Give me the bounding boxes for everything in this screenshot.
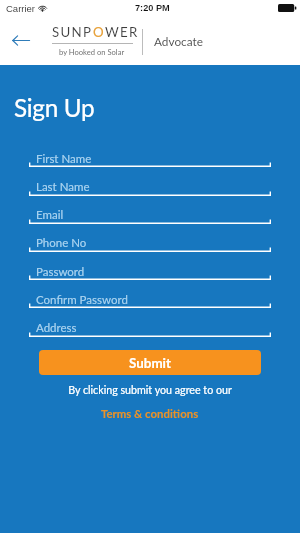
staticText: First Name: [36, 152, 92, 166]
button[interactable]: Back: [3, 26, 39, 55]
button[interactable]: [29, 316, 271, 340]
staticText: Carrier: [6, 3, 36, 14]
staticText: Sign Up: [14, 93, 95, 122]
staticText: by Hooked on Solar: [59, 47, 125, 56]
staticText: WER: [105, 24, 139, 40]
button[interactable]: Submit: [39, 350, 261, 375]
button[interactable]: [29, 259, 271, 283]
staticText: SUNP: [52, 24, 93, 40]
button[interactable]: [29, 146, 271, 170]
button[interactable]: Terms & conditions: [101, 407, 199, 421]
staticText: Password: [36, 265, 85, 279]
staticText: Phone No: [36, 236, 87, 250]
staticText: Confirm Password: [36, 293, 128, 307]
button[interactable]: [29, 175, 271, 199]
staticText: 7:20 PM: [135, 3, 170, 13]
staticText: Submit: [129, 355, 171, 371]
button[interactable]: [29, 203, 271, 227]
button[interactable]: [29, 287, 271, 311]
button[interactable]: [29, 231, 271, 255]
staticText: By clicking submit you agree to our: [0, 383, 300, 396]
staticText: Address: [36, 321, 77, 335]
staticText: Advocate: [154, 34, 203, 48]
staticText: Last Name: [36, 180, 90, 194]
staticText: Email: [36, 208, 64, 222]
staticText: O: [93, 24, 105, 40]
